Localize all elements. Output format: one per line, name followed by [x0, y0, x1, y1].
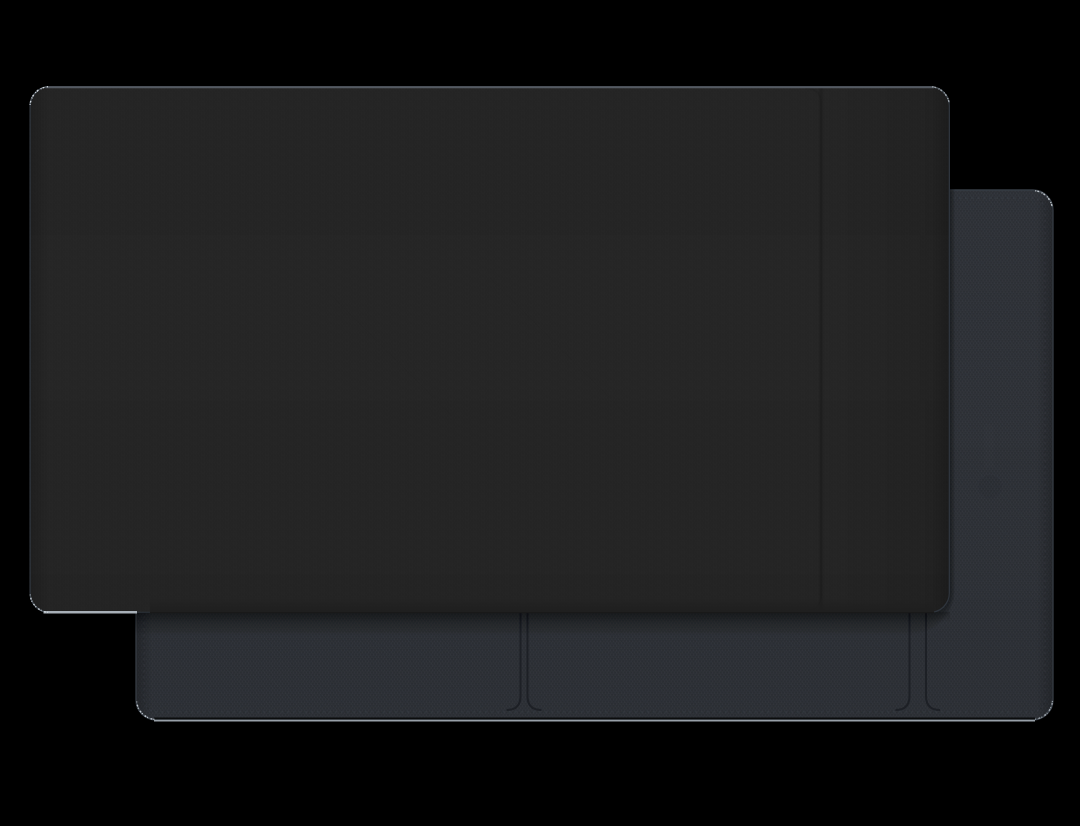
button[interactable]: Charcoal tri-fold desk mat [136, 190, 1053, 720]
button[interactable]: Black leather desk mat [30, 86, 951, 613]
